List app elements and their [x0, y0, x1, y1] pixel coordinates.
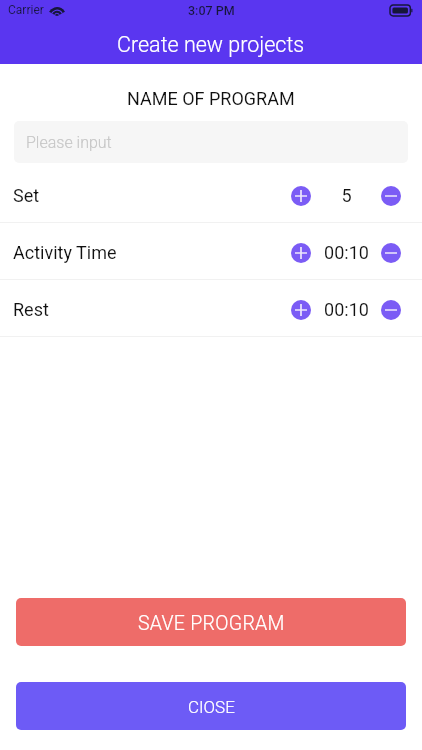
staticText: Create new projects — [117, 32, 305, 57]
staticText: 00:10 — [324, 299, 369, 320]
staticText: 00:10 — [324, 242, 369, 263]
button[interactable]: Increase — [291, 300, 311, 320]
staticText: 5 — [341, 185, 352, 206]
staticText: Rest — [13, 299, 49, 320]
button[interactable]: SAVE PROGRAM — [16, 598, 406, 646]
staticText: 3:07 PM — [188, 3, 235, 18]
staticText: Please input — [26, 133, 112, 152]
button[interactable]: Increase — [291, 243, 311, 263]
staticText: CIOSE — [188, 697, 235, 717]
staticText: SAVE PROGRAM — [138, 612, 285, 635]
staticText: NAME OF PROGRAM — [127, 88, 295, 109]
staticText: Carrier — [8, 3, 44, 17]
button[interactable]: Decrease — [381, 186, 401, 206]
button[interactable]: Rest — [0, 280, 422, 336]
button[interactable]: Decrease — [381, 243, 401, 263]
button[interactable]: Please input — [14, 121, 408, 163]
button[interactable]: Increase — [291, 186, 311, 206]
staticText: Activity Time — [13, 242, 117, 263]
button[interactable]: Set — [0, 166, 422, 222]
staticText: Set — [13, 185, 40, 206]
button[interactable]: CIOSE — [16, 682, 406, 730]
button[interactable]: Decrease — [381, 300, 401, 320]
button[interactable]: Activity Time — [0, 223, 422, 279]
